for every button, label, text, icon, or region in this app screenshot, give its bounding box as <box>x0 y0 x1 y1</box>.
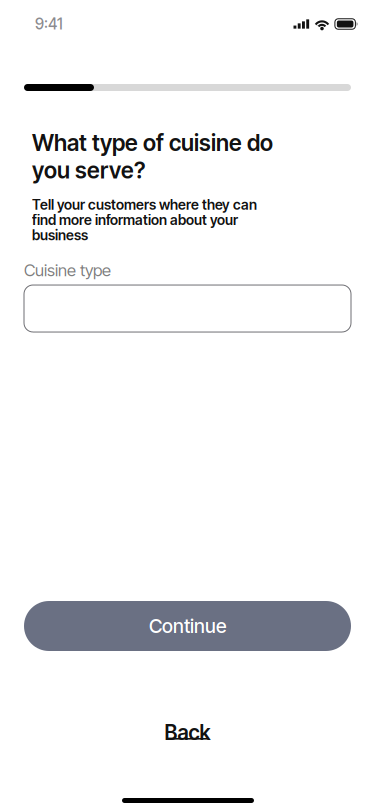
button[interactable]: Continue <box>24 601 351 651</box>
staticText: Cuisine type <box>24 260 111 280</box>
button[interactable]: Cuisine type <box>24 285 351 332</box>
staticText: 9:41 <box>35 15 63 33</box>
staticText: Back <box>164 720 210 745</box>
staticText: What type of cuisine do you serve? <box>32 129 273 184</box>
staticText: Continue <box>149 614 226 638</box>
button[interactable]: Back <box>0 720 375 746</box>
staticText: Tell your customers where they can find … <box>32 197 257 243</box>
